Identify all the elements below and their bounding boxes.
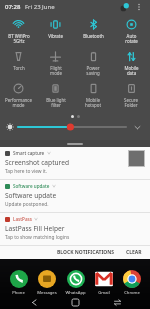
staticText: Smart capture — [13, 150, 45, 156]
staticText: WhatsApp — [65, 290, 86, 296]
button[interactable]: Gmail — [90, 270, 117, 296]
staticText: 07:28 — [5, 3, 21, 11]
button[interactable]: BT WifiPro 5GHz — [0, 16, 37, 48]
staticText: Chrome — [124, 290, 140, 296]
staticText: Gmail — [98, 290, 110, 296]
staticText: Tap here to view it. — [5, 168, 48, 175]
staticText: Software update — [13, 183, 50, 189]
staticText: BLOCK NOTIFICATIONS — [57, 249, 115, 256]
button[interactable]: Secure Folder — [112, 80, 150, 112]
staticText: Torch — [13, 65, 25, 71]
button[interactable]: Flight mode — [37, 48, 74, 80]
staticText: Vibrate — [48, 33, 63, 39]
button[interactable]: Home — [67, 296, 83, 309]
button[interactable]: Back — [26, 296, 42, 309]
button[interactable]: WhatsApp — [62, 270, 89, 296]
button[interactable]: Auto rotate — [112, 16, 150, 48]
button[interactable]: BLOCK NOTIFICATIONS — [54, 247, 118, 258]
staticText: Phone — [12, 290, 25, 296]
staticText: Power saving — [86, 65, 100, 77]
staticText: BT WifiPro 5GHz — [8, 33, 30, 45]
button[interactable]: Software update — [0, 180, 150, 212]
button[interactable]: Smart capture — [0, 147, 150, 179]
button[interactable]: Recent apps — [109, 296, 125, 309]
button[interactable]: Mobile data — [112, 48, 150, 80]
button[interactable]: LastPass — [0, 213, 150, 245]
staticText: Fri 23 June — [25, 3, 55, 11]
button[interactable]: Notification icon — [118, 1, 130, 13]
staticText: CLEAR — [126, 249, 142, 256]
button[interactable]: Mobile hotspot — [74, 80, 112, 112]
staticText: Bluetooth — [83, 33, 104, 39]
button[interactable]: Performance mode — [0, 80, 37, 112]
staticText: Mobile data — [124, 65, 139, 77]
staticText: LastPass — [13, 216, 32, 222]
staticText: Update postponed. — [5, 201, 49, 208]
button[interactable]: Bluetooth — [74, 16, 112, 48]
staticText: Software update — [5, 191, 57, 200]
staticText: Auto rotate — [125, 33, 138, 45]
button[interactable]: Chrome — [118, 270, 145, 296]
staticText: Tap to show matching logins — [5, 234, 70, 241]
button[interactable]: Vibrate — [37, 16, 74, 48]
staticText: Performance mode — [5, 97, 32, 109]
button[interactable]: Messages — [33, 270, 60, 296]
button[interactable]: CLEAR — [123, 247, 145, 258]
staticText: Mobile hotspot — [85, 97, 101, 109]
button[interactable]: Blue light filter — [37, 80, 74, 112]
button[interactable] — [18, 121, 126, 133]
staticText: Flight mode — [50, 65, 62, 77]
staticText: Messages — [37, 290, 57, 296]
staticText: Screenshot captured — [5, 158, 69, 167]
button[interactable]: Torch — [0, 48, 37, 80]
button[interactable]: Phone — [5, 270, 32, 296]
button[interactable]: Expand brightness settings — [130, 120, 144, 134]
staticText: Blue light filter — [46, 97, 66, 109]
button[interactable]: More options — [133, 1, 145, 13]
button[interactable]: Power saving — [74, 48, 112, 80]
staticText: Secure Folder — [124, 97, 138, 109]
staticText: LastPass Fill Helper — [5, 224, 65, 233]
